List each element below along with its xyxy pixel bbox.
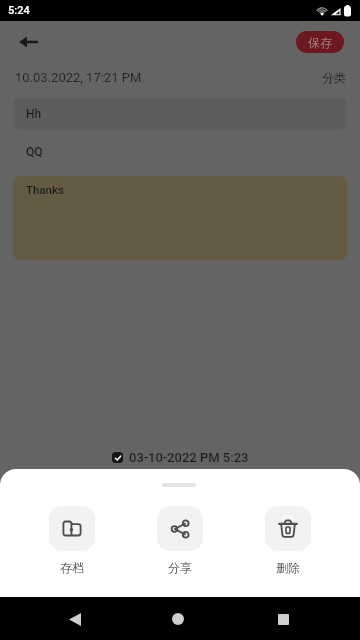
button[interactable]: Home bbox=[160, 601, 196, 637]
button[interactable]: Hh bbox=[13, 98, 347, 130]
staticText: QQ bbox=[26, 145, 43, 159]
button[interactable]: Back bbox=[10, 24, 46, 60]
button[interactable]: Back bbox=[57, 601, 93, 637]
button[interactable]: 分享 bbox=[126, 506, 234, 575]
staticText: Hh bbox=[26, 107, 42, 121]
button[interactable]: 分类 bbox=[322, 70, 346, 85]
button[interactable]: QQ bbox=[13, 136, 347, 168]
staticText: 03-10-2022 PM 5:23 bbox=[129, 450, 249, 465]
button[interactable]: Recents bbox=[265, 601, 301, 637]
button[interactable]: 保存 bbox=[296, 31, 344, 53]
button[interactable]: Thanks bbox=[13, 176, 347, 260]
staticText: 10.03.2022, 17:21 PM bbox=[15, 70, 142, 85]
staticText: 删除 bbox=[276, 560, 300, 575]
staticText: 保存 bbox=[308, 35, 332, 50]
staticText: 存档 bbox=[60, 560, 84, 575]
staticText: 分类 bbox=[322, 70, 346, 85]
staticText: 分享 bbox=[168, 560, 192, 575]
staticText: Thanks bbox=[26, 183, 64, 196]
staticText: 5:24 bbox=[8, 4, 30, 17]
button[interactable]: 存档 bbox=[18, 506, 126, 575]
button[interactable]: 删除 bbox=[234, 506, 342, 575]
